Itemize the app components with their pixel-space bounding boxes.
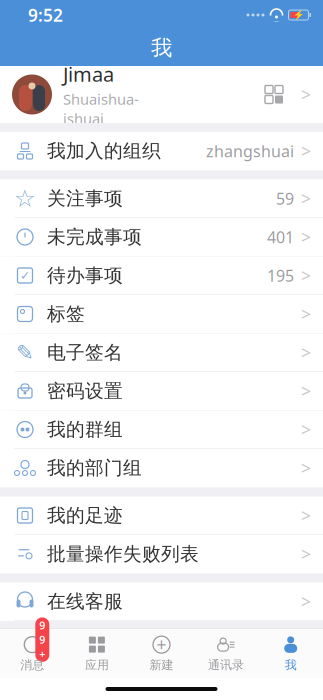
button[interactable]: 99+: [0, 629, 65, 677]
staticText: 401: [267, 226, 294, 248]
staticText: 新建: [149, 658, 173, 672]
button[interactable]: ✎: [0, 333, 323, 372]
button[interactable]: 在线客服: [0, 582, 323, 621]
button[interactable]: ✓: [0, 256, 323, 295]
staticText: >: [301, 418, 311, 441]
staticText: Shuaishuaishuai: [63, 89, 139, 128]
staticText: 195: [267, 265, 294, 286]
button[interactable]: 批量操作失败列表: [0, 535, 323, 573]
button[interactable]: ☆: [0, 179, 323, 218]
staticText: 我的群组: [47, 418, 123, 441]
staticText: 9:52: [28, 3, 63, 26]
staticText: >: [301, 264, 311, 287]
button[interactable]: 标签: [0, 295, 323, 333]
staticText: ☆: [14, 185, 36, 212]
staticText: 我: [285, 658, 297, 672]
staticText: >: [301, 590, 311, 613]
button[interactable]: 应用: [65, 629, 129, 677]
staticText: 我的部门组: [47, 456, 142, 479]
staticText: >: [301, 341, 311, 364]
button[interactable]: 我: [258, 629, 323, 677]
staticText: 我加入的组织: [47, 139, 161, 162]
staticText: 电子签名: [47, 341, 123, 364]
staticText: 我: [151, 35, 172, 61]
staticText: ✓: [20, 269, 30, 282]
staticText: >: [301, 139, 311, 162]
staticText: 我的足迹: [47, 504, 123, 527]
staticText: >: [301, 504, 311, 527]
staticText: zhangshuai: [206, 140, 294, 162]
button[interactable]: 密码设置: [0, 372, 323, 410]
staticText: >: [301, 83, 311, 106]
staticText: 应用: [85, 658, 109, 672]
staticText: ✎: [16, 340, 34, 365]
staticText: 99+: [39, 618, 45, 661]
staticText: >: [301, 456, 311, 479]
button[interactable]: 我的足迹: [0, 496, 323, 535]
staticText: ⚡: [292, 10, 304, 20]
staticText: 批量操作失败列表: [47, 542, 199, 565]
staticText: >: [301, 302, 311, 325]
staticText: 通讯录: [208, 658, 244, 672]
staticText: 在线客服: [47, 590, 123, 613]
button[interactable]: +: [129, 629, 194, 677]
staticText: >: [301, 542, 311, 565]
staticText: +: [156, 633, 166, 656]
staticText: 消息: [20, 658, 44, 672]
button[interactable]: 未完成事项: [0, 218, 323, 256]
button[interactable]: 我加入的组织: [0, 132, 323, 170]
staticText: 59: [276, 188, 294, 209]
staticText: 关注事项: [47, 187, 123, 210]
button[interactable]: 我的群组: [0, 410, 323, 449]
staticText: >: [301, 225, 311, 248]
staticText: 待办事项: [47, 264, 123, 287]
button[interactable]: 我的部门组: [0, 449, 323, 487]
staticText: 未完成事项: [47, 225, 142, 248]
staticText: >: [301, 379, 311, 402]
staticText: 标签: [47, 302, 85, 325]
staticText: 密码设置: [47, 379, 123, 402]
button[interactable]: 通讯录: [194, 629, 258, 677]
staticText: >: [301, 187, 311, 210]
staticText: Jimaa: [63, 61, 114, 87]
